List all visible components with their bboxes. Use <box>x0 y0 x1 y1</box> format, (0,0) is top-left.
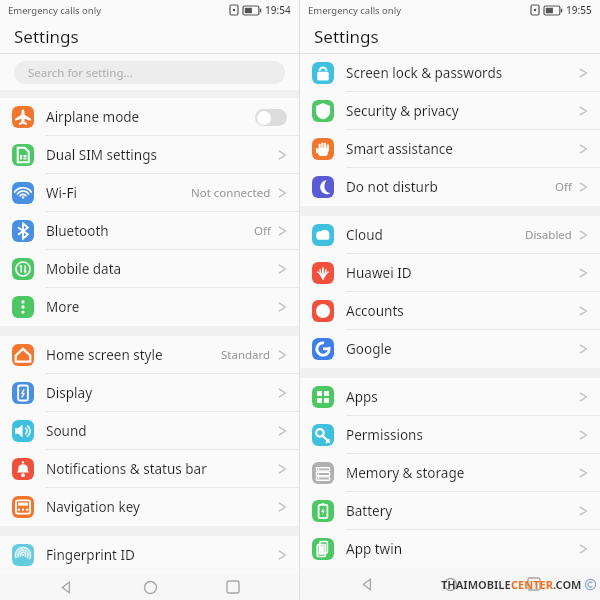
staticText: More <box>46 298 278 316</box>
staticText: Display <box>46 384 278 402</box>
button[interactable]: Display <box>0 374 299 412</box>
button[interactable]: Airplane mode <box>0 98 299 136</box>
button[interactable]: Back <box>350 568 384 600</box>
button[interactable]: Permissions <box>300 416 600 454</box>
staticText: Security & privacy <box>346 102 579 120</box>
staticText: Memory & storage <box>346 464 579 482</box>
staticText: Airplane mode <box>46 108 255 126</box>
staticText: Battery <box>346 502 579 520</box>
button[interactable]: Accounts <box>300 292 600 330</box>
button[interactable]: Dual SIM settings <box>0 136 299 174</box>
staticText: Off <box>555 179 572 195</box>
staticText: Navigation key <box>46 498 278 516</box>
staticText: Search for setting... <box>28 65 133 81</box>
button[interactable]: Battery <box>300 492 600 530</box>
staticText: Notifications & status bar <box>46 460 278 478</box>
button[interactable]: Apps <box>300 378 600 416</box>
staticText: Fingerprint ID <box>46 546 278 564</box>
button[interactable]: Smart assistance <box>300 130 600 168</box>
button[interactable]: Security & privacy <box>300 92 600 130</box>
button[interactable]: Bluetooth <box>0 212 299 250</box>
staticText: Cloud <box>346 226 525 244</box>
staticText: Off <box>254 223 271 239</box>
staticText: Accounts <box>346 302 579 320</box>
button[interactable]: Home <box>433 568 467 600</box>
staticText: Dual SIM settings <box>46 146 278 164</box>
staticText: Smart assistance <box>346 140 579 158</box>
staticText: Mobile data <box>46 260 278 278</box>
staticText: Disabled <box>525 227 572 243</box>
button[interactable]: More <box>0 288 299 326</box>
button[interactable]: Airplane mode toggle <box>255 109 287 126</box>
staticText: Do not disturb <box>346 178 555 196</box>
button[interactable]: Navigation key <box>0 488 299 526</box>
staticText: Bluetooth <box>46 222 254 240</box>
button[interactable]: Google <box>300 330 600 368</box>
staticText: Permissions <box>346 426 579 444</box>
staticText: 19:55 <box>566 3 592 17</box>
staticText: App twin <box>346 540 579 558</box>
staticText: Not connected <box>191 185 271 201</box>
staticText: Google <box>346 340 579 358</box>
staticText: Settings <box>14 25 79 48</box>
button[interactable]: Sound <box>0 412 299 450</box>
button[interactable]: Fingerprint ID <box>0 536 299 574</box>
button[interactable]: Cloud <box>300 216 600 254</box>
staticText: 19:54 <box>265 3 291 17</box>
staticText: Settings <box>314 25 379 48</box>
staticText: Emergency calls only <box>308 4 402 17</box>
staticText: CENTER <box>511 577 553 592</box>
button[interactable]: Home screen style <box>0 336 299 374</box>
staticText: Huawei ID <box>346 264 579 282</box>
button[interactable]: Search for setting... <box>14 61 285 84</box>
button[interactable]: Huawei ID <box>300 254 600 292</box>
staticText: .COM <box>553 577 582 592</box>
staticText: Apps <box>346 388 579 406</box>
button[interactable]: Recents <box>216 574 250 600</box>
button[interactable]: Recents <box>517 568 551 600</box>
staticText: Standard <box>221 347 271 363</box>
staticText: THAIMOBILE <box>441 577 511 592</box>
button[interactable]: Notifications & status bar <box>0 450 299 488</box>
button[interactable]: Do not disturb <box>300 168 600 206</box>
button[interactable]: Screen lock & passwords <box>300 54 600 92</box>
button[interactable]: Home <box>133 574 167 600</box>
staticText: Home screen style <box>46 346 221 364</box>
staticText: Sound <box>46 422 278 440</box>
staticText: Screen lock & passwords <box>346 64 579 82</box>
button[interactable]: Memory & storage <box>300 454 600 492</box>
button[interactable]: Mobile data <box>0 250 299 288</box>
button[interactable]: Back <box>49 574 83 600</box>
staticText: Emergency calls only <box>8 4 102 17</box>
button[interactable]: App twin <box>300 530 600 568</box>
button[interactable]: Wi-Fi <box>0 174 299 212</box>
staticText: Wi-Fi <box>46 184 191 202</box>
